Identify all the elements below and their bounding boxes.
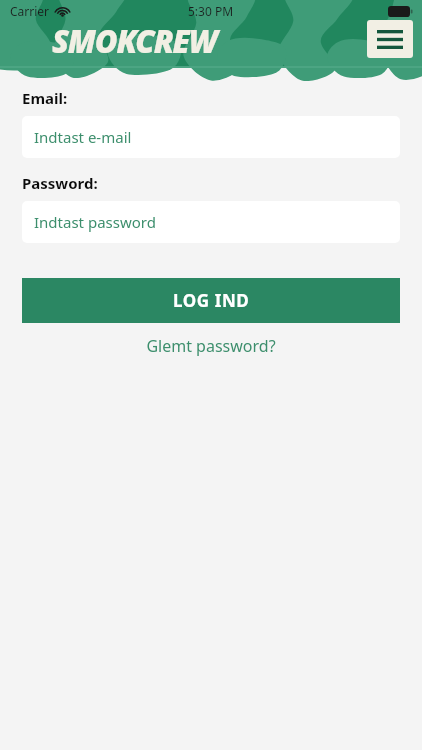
staticText: Carrier	[10, 3, 50, 19]
staticText: LOG IND	[173, 289, 250, 312]
staticText: 5:30 PM	[188, 3, 234, 19]
staticText: Glemt password?	[146, 335, 276, 357]
button[interactable]: Glemt password?	[22, 335, 400, 357]
button[interactable]: LOG IND	[22, 278, 400, 323]
staticText: Password:	[22, 173, 98, 193]
button[interactable]: Email input	[22, 116, 400, 158]
staticText: Email:	[22, 88, 68, 108]
button[interactable]: Menu	[367, 20, 413, 58]
button[interactable]: Password input	[22, 201, 400, 243]
staticText: Indtast e-mail	[34, 127, 132, 147]
staticText: SMOKCREW	[52, 20, 217, 62]
staticText: Indtast password	[34, 212, 156, 232]
